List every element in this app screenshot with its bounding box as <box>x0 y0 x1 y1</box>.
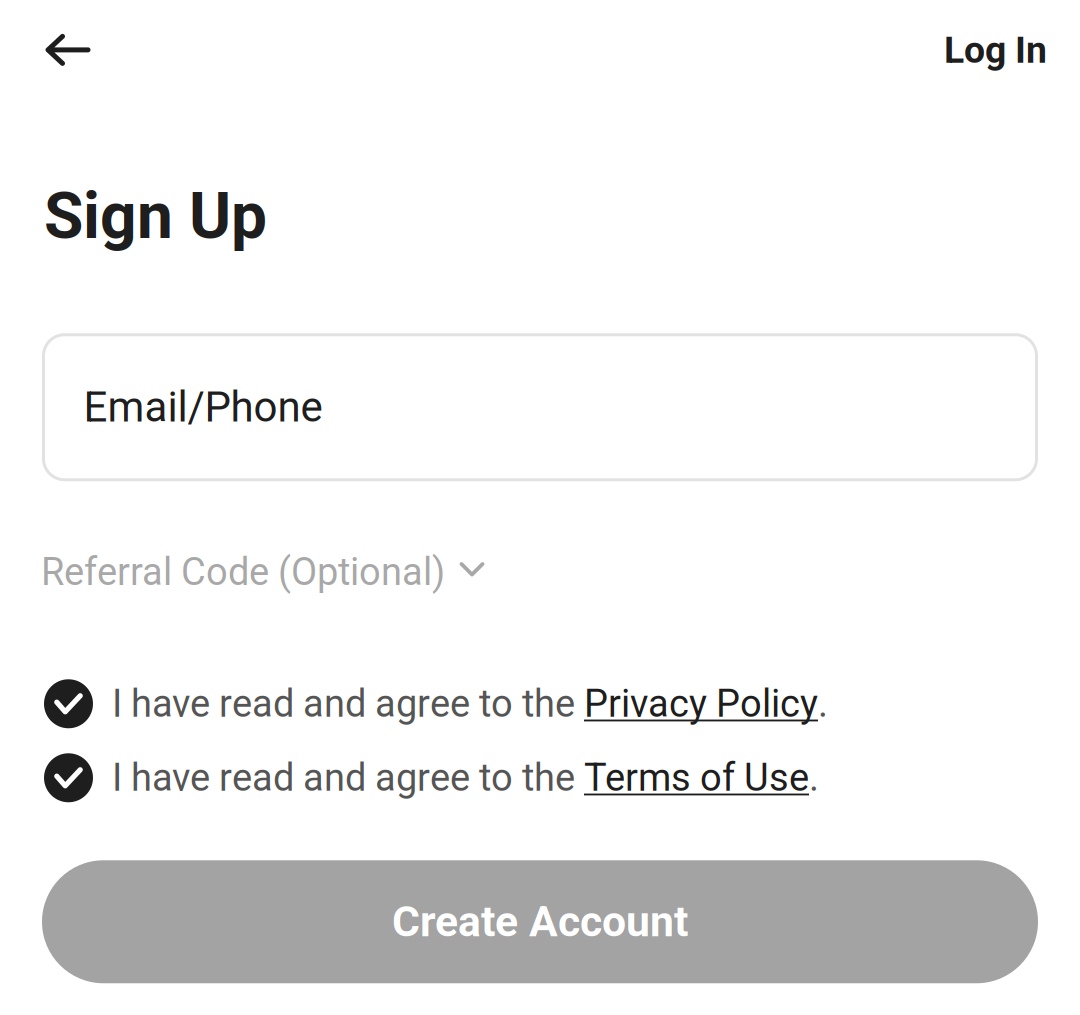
button[interactable]: Privacy Policy <box>584 681 818 726</box>
staticText: I have read and agree to the <box>112 681 584 726</box>
button[interactable]: Log In <box>924 12 1067 88</box>
button[interactable]: Agree to Terms of Use <box>44 753 93 802</box>
staticText: Log In <box>944 28 1047 72</box>
staticText: Email/Phone <box>83 383 322 432</box>
button[interactable]: Agree to Privacy Policy <box>44 679 93 728</box>
button[interactable]: Create Account <box>42 860 1038 983</box>
staticText: . <box>818 681 828 726</box>
button[interactable]: Back <box>29 18 107 81</box>
button[interactable]: Terms of Use <box>584 755 809 800</box>
staticText: Create Account <box>392 897 688 947</box>
staticText: Referral Code (Optional) <box>41 550 445 594</box>
staticText: Sign Up <box>44 179 267 254</box>
staticText: . <box>809 755 819 800</box>
staticText: I have read and agree to the <box>112 755 584 800</box>
button[interactable]: Email/Phone <box>43 335 1036 480</box>
staticText: Privacy Policy <box>584 681 818 726</box>
button[interactable]: Referral Code (Optional) <box>41 542 485 602</box>
staticText: Terms of Use <box>584 755 809 800</box>
